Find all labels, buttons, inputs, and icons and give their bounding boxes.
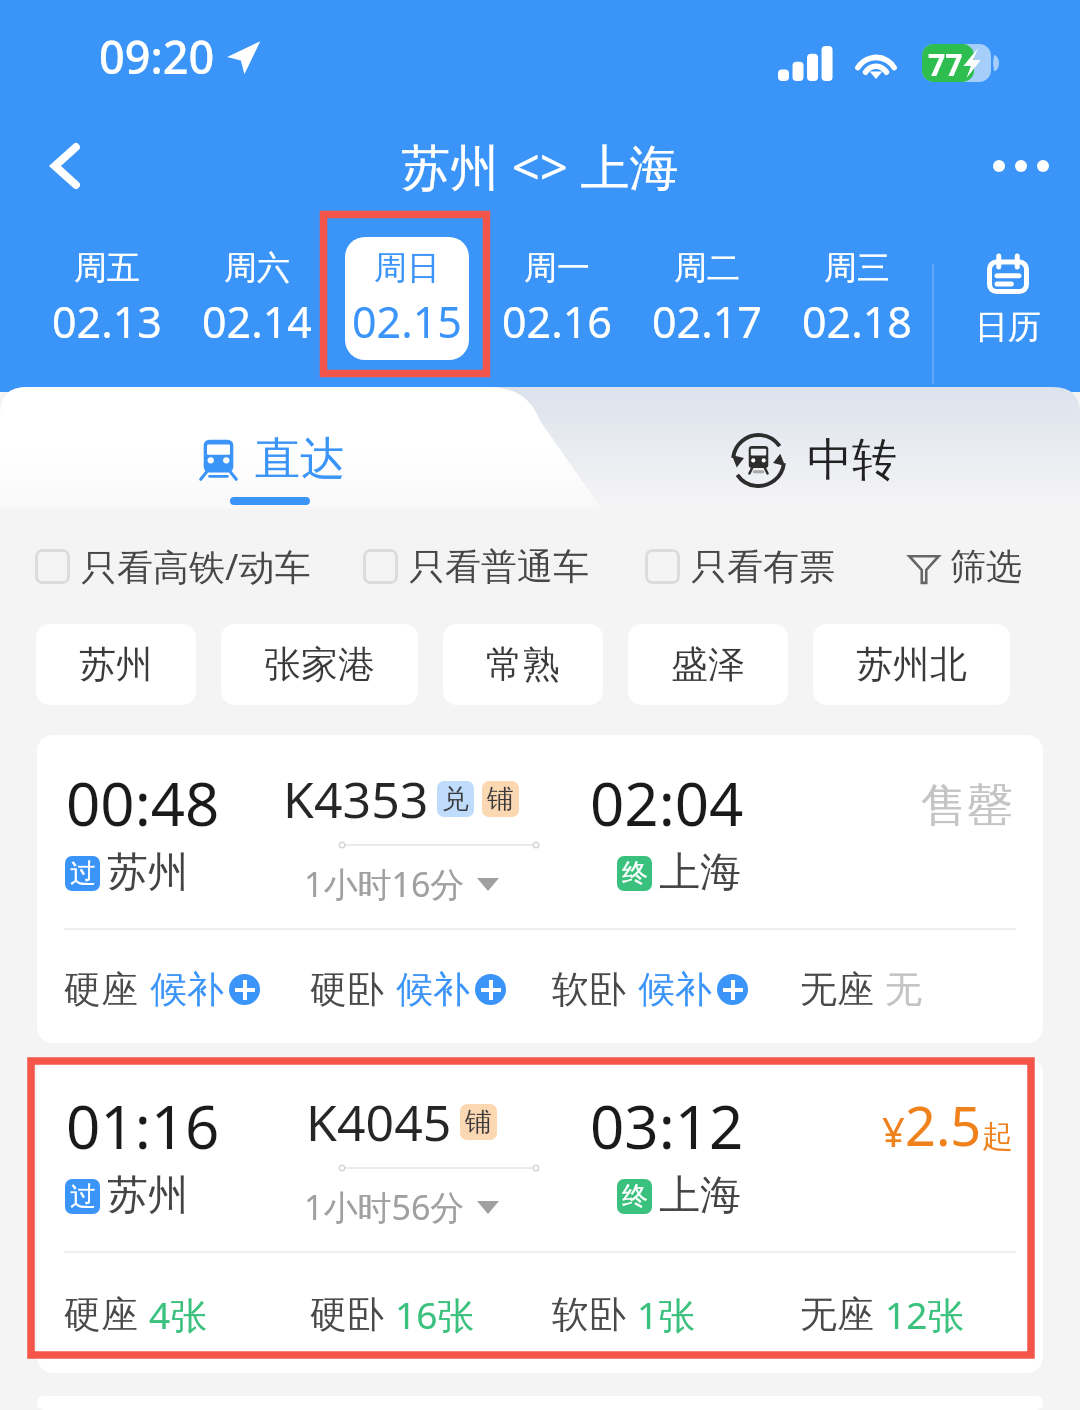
staticText: 02.18 [802,292,912,351]
staticText: 周一 [524,247,590,289]
button[interactable]: 周三 [795,237,919,360]
staticText: 起 [982,1117,1013,1156]
staticText: 02.15 [352,292,462,351]
staticText: 16张 [395,1289,475,1340]
staticText: 03:12 [590,1085,744,1167]
button[interactable]: 常熟 [443,624,603,705]
staticText: 只看普通车 [409,544,589,589]
staticText: 硬座 [64,966,138,1013]
staticText: 00:48 [66,762,220,844]
staticText: 中转 [807,432,897,489]
staticText: 常熟 [486,641,560,688]
staticText: 周五 [74,247,140,289]
staticText: ¥ [882,1104,905,1158]
staticText: 4张 [149,1289,208,1340]
button[interactable]: Back [26,127,104,205]
button[interactable]: 只看高铁/动车 [35,542,311,591]
staticText: 铺 [465,1105,492,1139]
staticText: 上海 [659,847,741,899]
staticText: 软卧 [552,966,626,1013]
button[interactable]: 张家港 [221,624,418,705]
staticText: 终 [622,857,648,890]
button[interactable]: 直达 [0,387,440,509]
staticText: 1小时56分 [304,1184,465,1230]
button[interactable]: 日历 [936,212,1080,372]
staticText: 兑 [442,782,469,816]
staticText: 77 [928,44,963,82]
staticText: 无座 [800,966,874,1013]
staticText: 周六 [224,247,290,289]
staticText: K4353 [283,765,429,833]
staticText: 只看有票 [691,544,835,589]
staticText: 02.13 [52,292,162,351]
button[interactable]: 00:48 [37,735,1043,1043]
staticText: 上海 [659,1170,741,1222]
button[interactable]: 盛泽 [628,624,788,705]
staticText: 苏州 <> 上海 [401,133,679,200]
staticText: 无 [885,966,922,1013]
button[interactable]: 周六 [195,237,319,360]
button[interactable]: More options [982,127,1060,205]
button[interactable]: 筛选 [908,544,1022,589]
staticText: K4045 [306,1088,452,1156]
staticText: 1张 [637,1289,696,1340]
staticText: 过 [70,1180,96,1213]
staticText: 张家港 [264,641,375,688]
staticText: 候补 [396,966,470,1013]
staticText: 筛选 [950,544,1022,589]
staticText: 直达 [255,431,345,488]
staticText: 01:16 [66,1085,220,1167]
button[interactable]: 周日 [345,237,469,360]
staticText: 02.16 [502,292,612,351]
staticText: 只看高铁/动车 [81,542,311,591]
staticText: 硬座 [64,1291,138,1338]
staticText: 02.17 [652,292,762,351]
button[interactable]: 周二 [645,237,769,360]
button[interactable]: 01:16 [37,1058,1043,1373]
staticText: 09:20 [99,26,215,87]
staticText: 苏州 [107,847,189,899]
staticText: 1小时16分 [304,861,465,907]
button[interactable]: 苏州 [36,624,196,705]
button[interactable]: 周五 [45,237,169,360]
staticText: 周二 [674,247,740,289]
button[interactable]: 只看有票 [645,544,835,589]
button[interactable]: 苏州北 [813,624,1010,705]
staticText: 02:04 [590,762,744,844]
staticText: 02.14 [202,292,312,351]
button[interactable]: 中转 [731,429,931,491]
staticText: 12张 [885,1289,965,1340]
staticText: 盛泽 [671,641,745,688]
staticText: 无座 [800,1291,874,1338]
staticText: 硬卧 [310,1291,384,1338]
staticText: 候补 [150,966,224,1013]
staticText: 周日 [374,247,440,289]
staticText: 售罄 [921,777,1013,835]
staticText: 苏州 [79,641,153,688]
staticText: 过 [70,857,96,890]
button[interactable]: 只看普通车 [363,544,589,589]
staticText: 周三 [824,247,890,289]
staticText: 2.5 [905,1088,982,1162]
staticText: 苏州北 [856,641,967,688]
staticText: 终 [622,1180,648,1213]
staticText: 硬卧 [310,966,384,1013]
staticText: 日历 [975,306,1041,348]
staticText: 软卧 [552,1291,626,1338]
staticText: 苏州 [107,1170,189,1222]
staticText: 铺 [487,782,514,816]
button[interactable]: 周一 [495,237,619,360]
staticText: 候补 [638,966,712,1013]
